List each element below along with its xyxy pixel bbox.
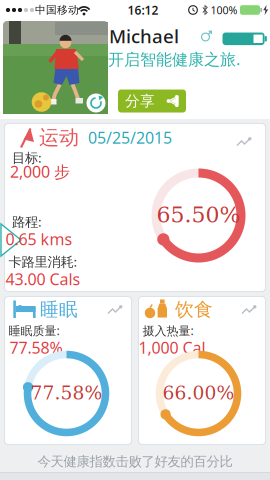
staticText: 运动 [39, 125, 79, 150]
button[interactable]: 分享 [118, 89, 186, 112]
staticText: 睡眠质量: [8, 322, 59, 338]
button[interactable]: 打开侧边栏 [0, 0, 270, 480]
staticText: 100% [210, 3, 237, 17]
staticText: 今天健康指数击败了好友的百分比 [37, 453, 232, 470]
staticText: 卡路里消耗: [8, 253, 77, 270]
staticText: 65.50% [156, 202, 240, 228]
staticText: 开启智能健康之旅. [108, 48, 240, 70]
staticText: 1,000 Cal [138, 337, 205, 358]
staticText: 77.58% [30, 382, 102, 404]
button[interactable]: 刷新 [0, 0, 270, 480]
staticText: 43.00 Cals [5, 268, 80, 290]
staticText: 66.00% [162, 382, 234, 404]
staticText: 路程: [12, 213, 42, 230]
staticText: 分享 [125, 92, 155, 110]
staticText: 饮食 [175, 298, 213, 321]
staticText: 中国移动 [35, 3, 79, 16]
staticText: 2,000 步 [10, 161, 70, 182]
staticText: 睡眠 [40, 298, 78, 321]
staticText: Michael [109, 24, 179, 48]
staticText: 16:12 [127, 2, 158, 18]
staticText: 目标: [12, 149, 42, 166]
staticText: 0.65 kms [5, 228, 72, 250]
staticText: 摄入热量: [142, 322, 193, 338]
staticText: 05/25/2015 [88, 127, 172, 148]
staticText: 77.58% [9, 337, 62, 358]
